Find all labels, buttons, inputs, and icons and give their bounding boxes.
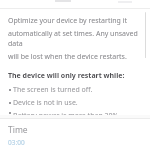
staticText: Time <box>8 124 28 136</box>
staticText: automatically at set times. Any unsaved … <box>8 29 140 49</box>
staticText: 03:00 <box>8 138 25 145</box>
staticText: will be lost when the device restarts. <box>8 52 127 62</box>
staticText: The screen is turned off. <box>13 85 93 95</box>
staticText: Optimize your device by restarting it <box>8 16 128 26</box>
staticText: The device will only restart while: <box>8 71 125 81</box>
staticText: Device is not in use. <box>13 98 78 108</box>
staticText: Battery power is more than 30%. <box>13 111 121 115</box>
button[interactable]: Time <box>0 119 150 150</box>
